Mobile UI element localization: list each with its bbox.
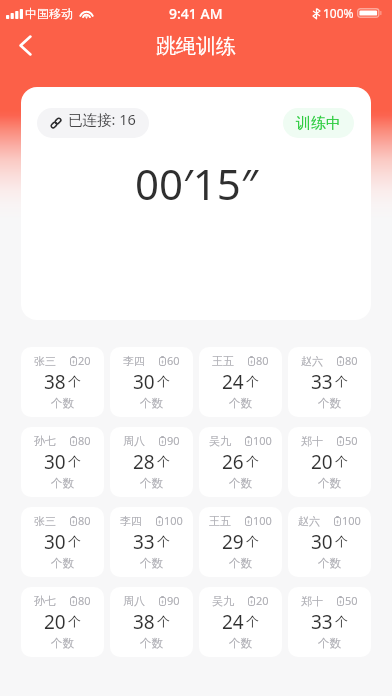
staticText: 个数 [51,556,74,570]
staticText: 个数 [51,636,74,650]
button[interactable]: 训练中 [283,108,354,138]
staticText: 30 [133,369,155,395]
staticText: 100 [342,513,361,528]
staticText: 个数 [318,636,341,650]
button[interactable]: Back [0,26,50,70]
staticText: 30 [44,529,66,555]
button[interactable]: 张三 [21,507,104,577]
staticText: 个 [335,613,348,629]
staticText: 个 [68,453,81,469]
button[interactable]: 吴九 [199,427,282,497]
staticText: 个 [157,453,170,469]
button[interactable]: 王五 [199,507,282,577]
button[interactable]: 张三 [21,347,104,417]
staticText: 中国移动 [25,6,73,21]
staticText: 个 [68,533,81,549]
button[interactable]: 王五 [199,347,282,417]
staticText: 33 [133,529,155,555]
staticText: 跳绳训练 [156,34,236,59]
staticText: 个 [335,373,348,389]
staticText: 个数 [51,396,74,410]
staticText: 个 [246,453,259,469]
staticText: 38 [44,369,66,395]
button[interactable]: 孙七 [21,427,104,497]
staticText: 已连接: 16 [68,109,136,129]
staticText: 90 [167,593,180,608]
button[interactable]: 赵六 [288,347,371,417]
button[interactable]: 郑十 [288,587,371,657]
staticText: 郑十 [301,594,323,608]
staticText: 李四 [120,514,142,528]
staticText: 33 [311,609,333,635]
button[interactable]: 李四 [110,507,193,577]
staticText: 个 [157,613,170,629]
button[interactable]: 李四 [110,347,193,417]
staticText: 王五 [212,354,234,368]
staticText: 26 [222,449,244,475]
staticText: 个数 [140,476,163,490]
staticText: 个数 [229,476,252,490]
staticText: 29 [222,529,244,555]
staticText: 80 [345,353,358,368]
staticText: 20 [44,609,66,635]
staticText: 吴九 [212,594,234,608]
button[interactable]: 周八 [110,427,193,497]
staticText: 100% [323,5,354,21]
staticText: 9:41 AM [169,4,223,23]
staticText: 个数 [318,476,341,490]
staticText: 训练中 [296,114,341,133]
staticText: 80 [78,593,91,608]
staticText: 个 [157,373,170,389]
staticText: 00′15″ [135,155,258,212]
staticText: 80 [78,433,91,448]
staticText: 个数 [51,476,74,490]
staticText: 24 [222,369,244,395]
button[interactable]: 已连接: 16 [37,108,149,138]
staticText: 80 [256,353,269,368]
staticText: 30 [311,529,333,555]
staticText: 个 [68,613,81,629]
staticText: 20 [311,449,333,475]
staticText: 30 [44,449,66,475]
staticText: 个数 [318,556,341,570]
staticText: 38 [133,609,155,635]
staticText: 50 [345,593,358,608]
staticText: 赵六 [301,354,323,368]
staticText: 个 [335,533,348,549]
staticText: 孙七 [34,594,56,608]
staticText: 100 [253,513,272,528]
staticText: 个 [246,613,259,629]
button[interactable]: 孙七 [21,587,104,657]
staticText: 50 [345,433,358,448]
staticText: 个数 [229,636,252,650]
staticText: 郑十 [301,434,323,448]
staticText: 个数 [140,556,163,570]
staticText: 个数 [318,396,341,410]
staticText: 个数 [229,396,252,410]
staticText: 个 [335,453,348,469]
staticText: 20 [78,353,91,368]
staticText: 个 [246,373,259,389]
staticText: 100 [253,433,272,448]
staticText: 吴九 [209,434,231,448]
staticText: 个数 [229,556,252,570]
staticText: 90 [167,433,180,448]
staticText: 李四 [123,354,145,368]
staticText: 张三 [34,354,56,368]
button[interactable]: 郑十 [288,427,371,497]
staticText: 周八 [123,594,145,608]
staticText: 80 [78,513,91,528]
staticText: 33 [311,369,333,395]
button[interactable]: 周八 [110,587,193,657]
staticText: 周八 [123,434,145,448]
staticText: 个 [68,373,81,389]
staticText: 个 [246,533,259,549]
staticText: 个数 [140,636,163,650]
staticText: 张三 [34,514,56,528]
staticText: 24 [222,609,244,635]
staticText: 28 [133,449,155,475]
staticText: 孙七 [34,434,56,448]
staticText: 60 [167,353,180,368]
button[interactable]: 吴九 [199,587,282,657]
button[interactable]: 赵六 [288,507,371,577]
